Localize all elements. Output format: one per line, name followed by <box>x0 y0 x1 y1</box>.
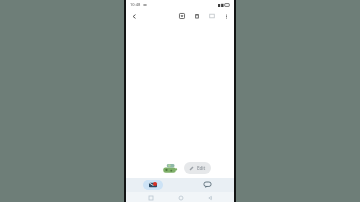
staticText: Edit <box>197 165 206 171</box>
button[interactable]: Home <box>176 193 185 202</box>
button[interactable]: Archive <box>177 11 187 21</box>
button[interactable]: Move <box>207 11 217 21</box>
button[interactable]: Back <box>129 11 139 21</box>
button[interactable]: Edit <box>184 162 211 174</box>
button[interactable]: Mail <box>126 178 180 192</box>
button[interactable]: Chat <box>180 178 234 192</box>
button[interactable]: Back <box>205 193 214 202</box>
button[interactable]: More options <box>221 11 231 21</box>
button[interactable]: Recents <box>146 193 155 202</box>
button[interactable]: Delete <box>192 11 202 21</box>
staticText: 10:48 <box>130 2 141 7</box>
